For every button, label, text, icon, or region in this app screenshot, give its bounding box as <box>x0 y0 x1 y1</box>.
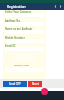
staticText: Select Your Category <box>5 10 32 14</box>
staticText: Name as per Aadhaar <box>5 27 33 31</box>
button[interactable]: Previous page <box>53 4 58 9</box>
staticText: Aadhaar No. <box>5 19 21 23</box>
button[interactable]: Next page <box>58 4 63 9</box>
staticText: Registration <box>7 5 26 9</box>
button[interactable]: Reset <box>28 81 42 87</box>
staticText: Reset <box>32 82 39 86</box>
staticText: Send OTP <box>9 82 21 86</box>
button[interactable]: Chat support <box>41 88 48 95</box>
button[interactable]: Send OTP <box>3 81 27 87</box>
staticText: Refresh Code <box>14 63 29 66</box>
staticText: Mobile Number <box>5 36 25 40</box>
staticText: Email ID <box>5 44 16 48</box>
